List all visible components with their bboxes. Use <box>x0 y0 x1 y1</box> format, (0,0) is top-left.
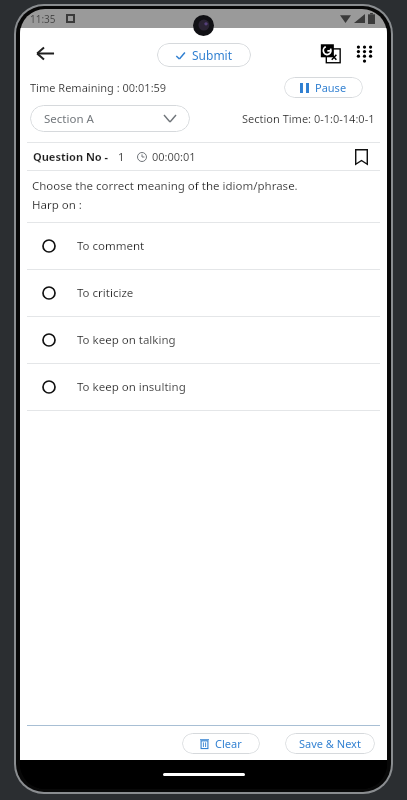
button[interactable]: Save & Next <box>285 733 375 754</box>
button[interactable]: Section A <box>30 105 190 132</box>
staticText: 11:35 <box>30 12 56 26</box>
button[interactable]: Translate <box>315 38 345 68</box>
button[interactable]: To keep on insulting <box>20 364 387 410</box>
button[interactable]: To keep on talking <box>20 317 387 363</box>
staticText: Harp on : <box>32 197 82 213</box>
button[interactable]: Clear <box>182 733 260 754</box>
button[interactable]: Pause <box>284 77 363 98</box>
button[interactable]: Back <box>26 34 64 72</box>
button[interactable]: To criticize <box>20 270 387 316</box>
staticText: Choose the correct meaning of the idiom/… <box>32 178 298 194</box>
button[interactable]: Bookmark question <box>349 145 373 169</box>
staticText: Time Remaining : 00:01:59 <box>30 80 167 95</box>
staticText: To keep on talking <box>77 332 176 348</box>
staticText: To comment <box>77 238 145 254</box>
staticText: 00:00:01 <box>152 149 196 164</box>
staticText: Submit <box>192 47 233 63</box>
staticText: Question No - <box>33 149 109 164</box>
staticText: 1 <box>118 149 125 164</box>
staticText: Clear <box>215 736 242 751</box>
staticText: Section Time: 0-1:0-14:0-1 <box>242 111 375 126</box>
staticText: Section A <box>44 111 94 127</box>
button[interactable]: To comment <box>20 223 387 269</box>
button[interactable]: Keyboard options <box>349 38 379 68</box>
staticText: To keep on insulting <box>77 379 186 395</box>
button[interactable]: Submit <box>157 43 251 67</box>
staticText: Pause <box>315 80 347 95</box>
staticText: Save & Next <box>299 736 361 751</box>
staticText: To criticize <box>77 285 134 301</box>
